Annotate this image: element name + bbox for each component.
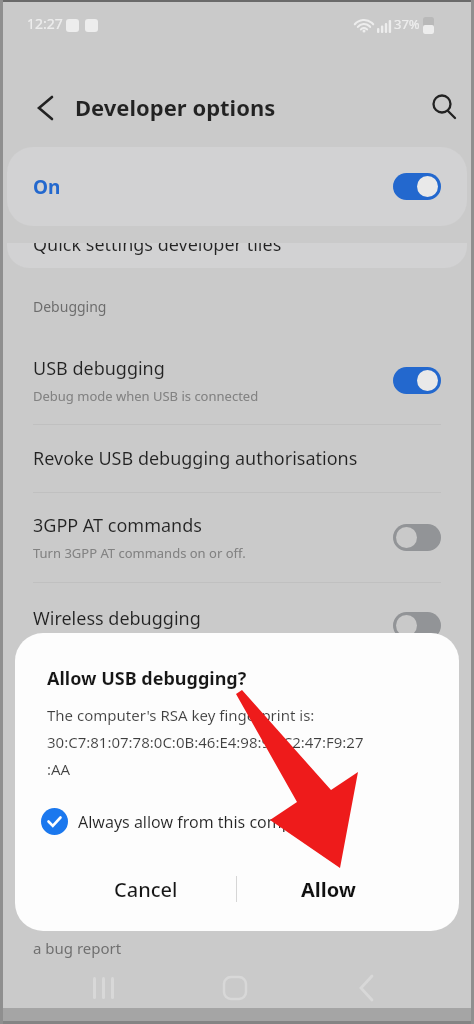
staticText: Revoke USB debugging authorisations <box>33 446 358 471</box>
button[interactable] <box>393 173 441 200</box>
staticText: Wireless debugging <box>33 606 393 631</box>
staticText: Allow <box>301 876 356 903</box>
staticText: Cancel <box>114 876 178 903</box>
button[interactable]: Revoke USB debugging authorisations <box>0 425 474 491</box>
button[interactable]: Quick settings developer tiles <box>7 243 467 268</box>
button[interactable] <box>393 524 441 551</box>
staticText: On <box>33 174 393 200</box>
button[interactable] <box>158 960 316 1016</box>
button[interactable]: USB debugging <box>0 338 474 423</box>
button[interactable]: Allow <box>237 864 419 914</box>
button[interactable] <box>393 367 441 394</box>
button[interactable]: On <box>7 147 467 226</box>
button[interactable]: 3GPP AT commands <box>0 493 474 582</box>
button[interactable]: Wireless debugging <box>0 583 474 653</box>
staticText: Turn 3GPP AT commands on or off. <box>33 544 246 562</box>
button[interactable]: Always allow from this computer <box>41 808 323 835</box>
button[interactable] <box>0 80 60 136</box>
button[interactable] <box>316 960 474 1016</box>
staticText: Allow USB debugging? <box>47 666 247 691</box>
staticText: Developer options <box>75 92 276 122</box>
button[interactable] <box>418 80 474 136</box>
staticText: USB debugging <box>33 356 165 381</box>
staticText: Debugging <box>33 297 107 316</box>
button[interactable] <box>0 960 158 1016</box>
staticText: Debug mode when USB is connected <box>33 387 259 405</box>
staticText: The computer's RSA key fingerprint is: 3… <box>47 705 364 780</box>
button[interactable] <box>393 612 441 639</box>
staticText: 12:27 <box>27 14 63 33</box>
staticText: a bug report <box>33 938 122 958</box>
staticText: Quick settings developer tiles <box>33 243 282 257</box>
staticText: Always allow from this computer <box>78 811 323 833</box>
button[interactable]: Cancel <box>55 864 236 914</box>
staticText: 37% <box>394 15 420 33</box>
staticText: 3GPP AT commands <box>33 513 202 538</box>
